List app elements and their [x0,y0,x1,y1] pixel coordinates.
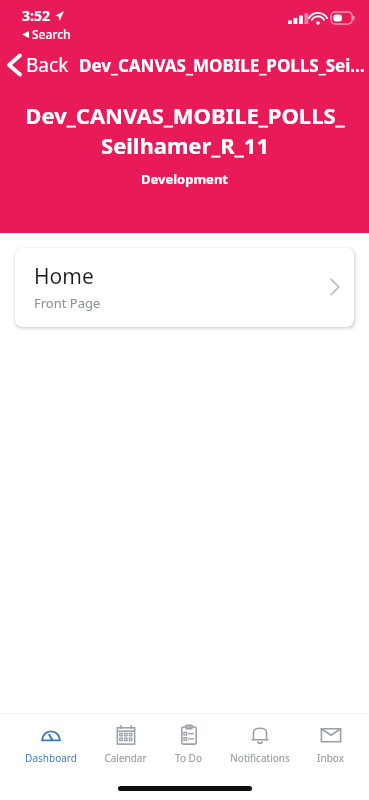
staticText: To Do [175,751,202,765]
button[interactable]: Dashboard [22,721,80,767]
staticText: Notifications [230,751,290,765]
button[interactable]: Inbox [314,721,347,767]
staticText: Search [32,26,71,42]
staticText: Front Page [34,294,101,312]
staticText: Dev_CANVAS_MOBILE_POLLS_ Seilhamer_R_11 [25,100,345,161]
staticText: Back [26,52,69,78]
staticText: Calendar [104,751,147,765]
button[interactable]: To Do [172,721,205,767]
staticText: 3:52 [22,6,50,25]
button[interactable]: Notifications [227,721,293,767]
staticText: Home [34,262,94,291]
staticText: Development [141,170,228,188]
button[interactable]: Back [0,48,73,82]
staticText: Dev_CANVAS_MOBILE_POLLS_Sei… [79,54,365,77]
staticText: Dashboard [25,751,77,765]
button[interactable]: Home [15,248,354,327]
staticText: Inbox [317,751,344,765]
button[interactable]: Calendar [101,721,150,767]
